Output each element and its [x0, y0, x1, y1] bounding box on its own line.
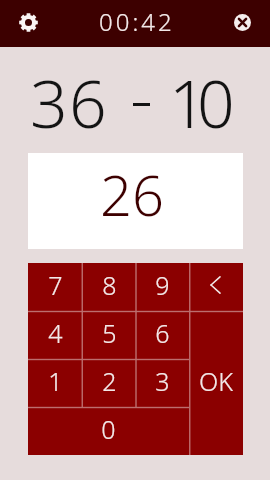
button[interactable]: 6: [136, 311, 189, 359]
staticText: 3: [155, 364, 170, 398]
button[interactable]: 0: [28, 407, 189, 455]
button[interactable]: 2: [82, 359, 136, 407]
staticText: 6: [69, 57, 107, 147]
staticText: 8: [102, 268, 117, 302]
staticText: 1: [169, 57, 207, 147]
staticText: 4: [48, 316, 63, 350]
staticText: 6: [155, 316, 170, 350]
staticText: 2: [102, 364, 117, 398]
staticText: 00:42: [99, 5, 175, 38]
staticText: 9: [155, 268, 170, 302]
button[interactable]: 1: [28, 359, 82, 407]
button[interactable]: 9: [136, 263, 189, 311]
staticText: 0: [101, 412, 116, 446]
button[interactable]: OK: [189, 311, 243, 455]
button[interactable]: Backspace: [189, 263, 243, 311]
button[interactable]: Close: [228, 8, 256, 36]
button[interactable]: 7: [28, 263, 82, 311]
staticText: 0: [197, 57, 235, 147]
staticText: OK: [199, 364, 233, 398]
staticText: 1: [48, 364, 63, 398]
staticText: 5: [102, 316, 117, 350]
button[interactable]: 8: [82, 263, 136, 311]
button[interactable]: Settings: [14, 8, 42, 36]
staticText: 3: [30, 57, 68, 147]
button[interactable]: 3: [136, 359, 189, 407]
staticText: 7: [48, 268, 63, 302]
button[interactable]: 5: [82, 311, 136, 359]
staticText: 26: [100, 156, 164, 232]
button[interactable]: 4: [28, 311, 82, 359]
